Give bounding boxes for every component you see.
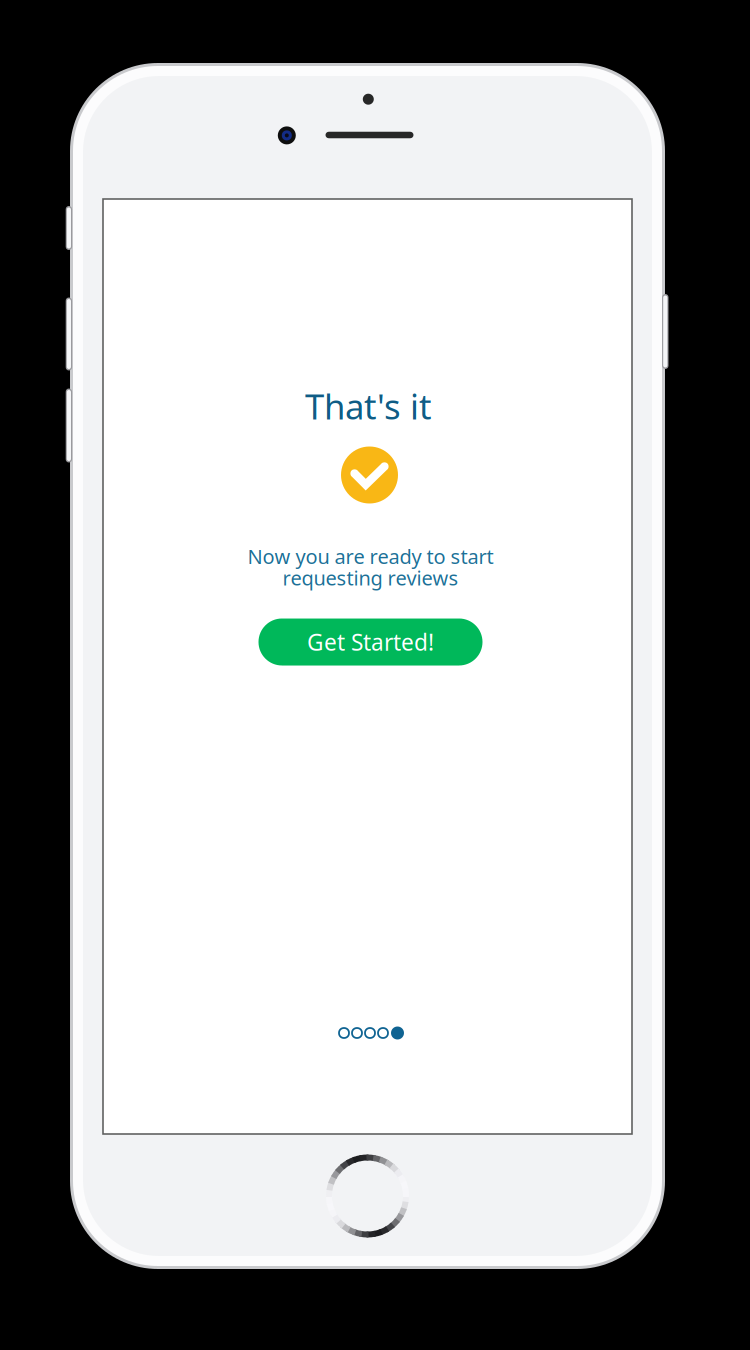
- button[interactable]: Page 3: [365, 1028, 375, 1038]
- button[interactable]: Page 2: [352, 1028, 362, 1038]
- staticText: Get Started!: [307, 627, 434, 657]
- staticText: requesting reviews: [282, 564, 458, 591]
- button[interactable]: Page 4: [378, 1028, 388, 1038]
- staticText: Now you are ready to start: [247, 543, 493, 569]
- button[interactable]: Page 5, current page: [391, 1026, 404, 1039]
- staticText: That's it: [305, 383, 432, 429]
- button[interactable]: Page 1: [339, 1028, 349, 1038]
- button[interactable]: Get Started!: [258, 618, 482, 665]
